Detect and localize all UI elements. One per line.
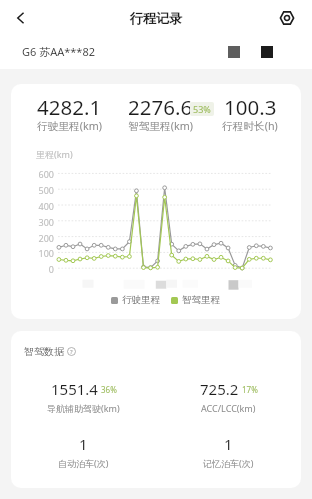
staticText: 1 <box>79 434 88 454</box>
staticText: 行驶里程(km) <box>37 119 102 134</box>
staticText: G6 苏AA***82 <box>22 44 95 59</box>
staticText: 17% <box>242 384 258 395</box>
staticText: 1 <box>224 434 233 454</box>
staticText: 自动泊车(次) <box>58 457 109 469</box>
staticText: 53% <box>193 103 211 115</box>
staticText: ? <box>70 348 73 356</box>
staticText: 0 <box>11 263 54 275</box>
staticText: 2276.6 <box>128 93 193 121</box>
staticText: 300 <box>11 216 54 228</box>
button[interactable]: Back <box>6 3 36 33</box>
staticText: 36% <box>101 384 117 395</box>
staticText: 行驶里程 <box>122 294 160 306</box>
staticText: 4282.1 <box>37 93 102 121</box>
button[interactable]: 智驾数据 <box>24 345 76 358</box>
staticText: 智驾数据 <box>24 345 64 358</box>
staticText: 导航辅助驾驶(km) <box>47 402 120 414</box>
staticText: 500 <box>11 184 54 196</box>
staticText: 400 <box>11 200 54 212</box>
staticText: 智驾里程 <box>182 294 220 306</box>
staticText: 600 <box>11 168 54 180</box>
staticText: 里程(km) <box>36 148 73 160</box>
staticText: 智驾里程(km) <box>128 119 193 134</box>
staticText: 行程记录 <box>130 10 182 26</box>
staticText: 200 <box>11 232 54 244</box>
staticText: 725.2 <box>200 379 239 399</box>
staticText: 行程时长(h) <box>222 119 278 134</box>
staticText: 1551.4 <box>51 379 98 399</box>
staticText: 100.3 <box>224 93 277 121</box>
button[interactable]: Settings <box>272 3 302 33</box>
staticText: ACC/LCC(km) <box>201 402 256 414</box>
staticText: 100 <box>11 247 54 259</box>
staticText: 记忆泊车(次) <box>203 457 254 469</box>
